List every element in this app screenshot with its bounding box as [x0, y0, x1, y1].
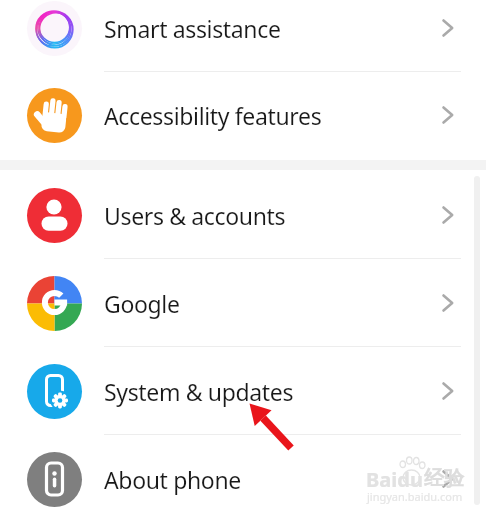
button[interactable]: Google [0, 259, 486, 347]
staticText: Baidu [366, 466, 423, 493]
button[interactable]: Smart assistance [0, 0, 486, 72]
button[interactable]: Accessibility features [0, 71, 486, 159]
staticText: Accessibility features [104, 100, 322, 131]
staticText: System & updates [104, 376, 294, 407]
staticText: 经验 [424, 466, 464, 491]
button[interactable]: Users & accounts [0, 171, 486, 259]
staticText: Google [104, 288, 180, 319]
button[interactable]: System & updates [0, 347, 486, 435]
staticText: Smart assistance [104, 13, 281, 44]
staticText: Users & accounts [104, 200, 286, 231]
staticText: About phone [104, 464, 241, 495]
staticText: jingyan.baidu.com [367, 489, 463, 504]
button[interactable]: About phone [0, 435, 486, 513]
